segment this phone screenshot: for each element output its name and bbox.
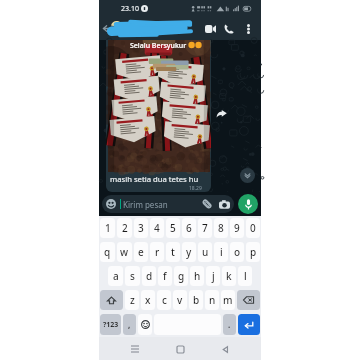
button[interactable]: Emoji: [138, 314, 152, 335]
staticText: 4: [154, 221, 160, 235]
staticText: Selalu Bersyukur: [130, 41, 187, 51]
button[interactable]: 2: [117, 218, 132, 238]
staticText: t: [171, 245, 175, 259]
button[interactable]: Selalu Bersyukur: [106, 40, 211, 192]
button[interactable]: p: [246, 242, 260, 262]
staticText: a: [113, 269, 119, 283]
button[interactable]: u: [198, 242, 212, 262]
button[interactable]: 7: [198, 218, 212, 238]
button[interactable]: Backspace: [237, 290, 260, 310]
staticText: w: [120, 245, 129, 259]
button[interactable]: Scroll to bottom: [240, 168, 255, 183]
staticText: v: [177, 293, 183, 307]
staticText: o: [234, 245, 241, 259]
staticText: u: [202, 245, 209, 259]
button[interactable]: Video call: [202, 21, 218, 37]
button[interactable]: z: [125, 290, 139, 310]
staticText: m: [223, 293, 233, 307]
staticText: j: [212, 269, 215, 283]
staticText: 9: [234, 221, 240, 235]
button[interactable]: Back: [100, 21, 115, 36]
staticText: 23.10: [121, 4, 139, 14]
staticText: b: [193, 293, 200, 307]
button[interactable]: t: [166, 242, 180, 262]
staticText: 0: [250, 221, 256, 235]
button[interactable]: r: [150, 242, 164, 262]
button[interactable]: v: [173, 290, 187, 310]
staticText: g: [178, 269, 185, 283]
staticText: h: [194, 269, 201, 283]
button[interactable]: Shift: [100, 290, 123, 310]
staticText: x: [145, 293, 151, 307]
button[interactable]: 3: [134, 218, 148, 238]
button[interactable]: Comma: [123, 314, 136, 335]
button[interactable]: a: [108, 266, 123, 286]
button[interactable]: 4: [150, 218, 164, 238]
button[interactable]: h: [190, 266, 204, 286]
button[interactable]: Recent apps: [126, 340, 144, 358]
staticText: r: [155, 245, 160, 259]
staticText: i: [220, 245, 223, 259]
staticText: 3: [138, 221, 144, 235]
button[interactable]: Symbols: [100, 314, 121, 335]
button[interactable]: Forward: [216, 108, 227, 119]
button[interactable]: d: [142, 266, 156, 286]
button[interactable]: i: [214, 242, 228, 262]
staticText: 2: [122, 221, 128, 235]
button[interactable]: x: [141, 290, 155, 310]
button[interactable]: n: [205, 290, 219, 310]
staticText: 8: [218, 221, 224, 235]
button[interactable]: e: [134, 242, 148, 262]
staticText: ?123: [103, 320, 119, 330]
button[interactable]: More options: [240, 21, 256, 37]
button[interactable]: Record voice message: [238, 194, 258, 214]
button[interactable]: j: [206, 266, 220, 286]
staticText: ,: [128, 319, 131, 330]
button[interactable]: Enter: [238, 314, 260, 335]
button[interactable]: Kirim pesan: [102, 195, 234, 213]
staticText: p: [250, 245, 257, 259]
button[interactable]: 9: [230, 218, 244, 238]
button[interactable]: Call: [221, 21, 237, 37]
button[interactable]: 5: [166, 218, 180, 238]
staticText: n: [209, 293, 216, 307]
staticText: .: [228, 319, 231, 330]
staticText: c: [162, 293, 167, 307]
staticText: y: [186, 245, 192, 259]
button[interactable]: [110, 17, 191, 40]
staticText: l: [244, 269, 247, 283]
staticText: Kirim pesan: [123, 199, 168, 210]
button[interactable]: 1: [100, 218, 115, 238]
button[interactable]: y: [182, 242, 196, 262]
staticText: f: [163, 269, 167, 283]
button[interactable]: k: [222, 266, 236, 286]
staticText: d: [146, 269, 153, 283]
button[interactable]: q: [100, 242, 115, 262]
button[interactable]: l: [238, 266, 252, 286]
button[interactable]: Period: [223, 314, 236, 335]
button[interactable]: c: [157, 290, 171, 310]
button[interactable]: o: [230, 242, 244, 262]
button[interactable]: f: [158, 266, 172, 286]
button[interactable]: g: [174, 266, 188, 286]
button[interactable]: 6: [182, 218, 196, 238]
staticText: 18.29: [189, 185, 202, 192]
button[interactable]: w: [117, 242, 132, 262]
button[interactable]: s: [125, 266, 140, 286]
button[interactable]: Back: [216, 340, 234, 358]
staticText: k: [226, 269, 232, 283]
button[interactable]: 8: [214, 218, 228, 238]
button[interactable]: m: [221, 290, 235, 310]
staticText: 6: [186, 221, 192, 235]
staticText: 7: [202, 221, 208, 235]
staticText: z: [130, 293, 135, 307]
staticText: q: [104, 245, 111, 259]
staticText: 5: [170, 221, 176, 235]
staticText: masih setia dua tetes hu: [110, 174, 199, 184]
button[interactable]: b: [189, 290, 203, 310]
staticText: s: [130, 269, 135, 283]
staticText: 1: [105, 221, 111, 235]
button[interactable]: Home: [171, 340, 189, 358]
button[interactable]: 0: [246, 218, 260, 238]
